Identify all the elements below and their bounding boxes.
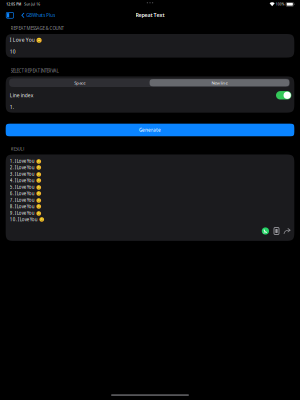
staticText: SELECT REPEAT INTERVAL bbox=[11, 68, 59, 74]
staticText: 100% bbox=[275, 2, 285, 6]
button[interactable]: Share bbox=[282, 226, 292, 235]
staticText: Line index bbox=[10, 92, 34, 99]
staticText: Generate bbox=[139, 127, 161, 133]
staticText: Space bbox=[74, 80, 85, 86]
button[interactable]: Send on WhatsApp bbox=[260, 226, 270, 236]
staticText: 5. I Love You 😊 bbox=[10, 184, 41, 190]
staticText: 2. I Love You 😊 bbox=[10, 165, 41, 171]
staticText: GBWhats Plus bbox=[26, 12, 55, 18]
staticText: 7. I Love You 😊 bbox=[10, 197, 41, 203]
button[interactable]: Copy bbox=[273, 226, 280, 236]
staticText: RESULT bbox=[11, 146, 25, 152]
staticText: Sun Jul 16 bbox=[21, 2, 40, 6]
button[interactable]: New line bbox=[150, 79, 289, 86]
staticText: 9. I Love You 😊 bbox=[10, 210, 41, 216]
button[interactable]: Show sidebar bbox=[4, 10, 16, 20]
button[interactable]: Space bbox=[10, 79, 149, 86]
staticText: Repeat Text bbox=[135, 11, 164, 18]
staticText: 10. I Love You 😊 bbox=[10, 216, 44, 222]
staticText: New line bbox=[211, 80, 227, 86]
button[interactable]: GBWhats Plus bbox=[19, 10, 57, 20]
staticText: I Love You 😊 bbox=[10, 36, 42, 43]
staticText: 8. I Love You 😊 bbox=[10, 203, 41, 209]
button[interactable]: Generate bbox=[0, 124, 300, 136]
staticText: 3. I Love You 😊 bbox=[10, 171, 41, 177]
staticText: 1. I Love You 😊 bbox=[10, 158, 41, 164]
staticText: 4. I Love You 😊 bbox=[10, 178, 41, 184]
staticText: 1. bbox=[10, 104, 14, 110]
staticText: 6. I Love You 😊 bbox=[10, 190, 41, 196]
staticText: 12:05 PM bbox=[6, 2, 21, 6]
staticText: REPEAT MESSAGE & COUNT bbox=[11, 25, 64, 31]
staticText: 10 bbox=[10, 48, 16, 55]
